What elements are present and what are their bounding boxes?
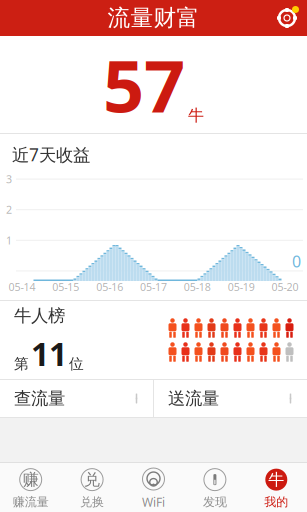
staticText: 兑 [84, 470, 100, 489]
staticText: 送流量 [168, 388, 219, 409]
staticText: 05-17 [140, 280, 167, 294]
button[interactable]: 牛 [246, 465, 307, 512]
button[interactable]: 查流量 [0, 380, 153, 417]
button[interactable]: 兑 [61, 465, 123, 512]
staticText: 发现 [203, 495, 227, 509]
staticText: 赚 [23, 470, 39, 489]
staticText: 05-14 [8, 280, 35, 294]
staticText: 11 [31, 332, 67, 375]
button[interactable]: 送流量 [154, 380, 307, 417]
staticText: 查流量 [14, 388, 65, 409]
button[interactable]: Settings [267, 0, 307, 36]
staticText: 05-19 [228, 280, 255, 294]
staticText: 近7天收益 [12, 143, 90, 166]
staticText: 05-16 [96, 280, 123, 294]
staticText: 兑换 [80, 495, 104, 509]
staticText: 3 [6, 172, 12, 186]
staticText: 1 [6, 233, 12, 247]
staticText: 流量财富 [107, 4, 199, 32]
staticText: 牛 [188, 106, 204, 125]
staticText: 2 [6, 203, 12, 217]
staticText: 05-18 [184, 280, 211, 294]
button[interactable]: 赚 [0, 465, 61, 512]
staticText: 我的 [264, 495, 288, 509]
staticText: 赚流量 [13, 495, 49, 509]
staticText: 05-15 [52, 280, 79, 294]
staticText: 位 [69, 355, 84, 373]
staticText: 05-20 [272, 280, 299, 294]
staticText: 0 [292, 251, 301, 272]
staticText: 第 [14, 355, 29, 373]
staticText: 57 [103, 37, 185, 132]
button[interactable]: 发现 [184, 465, 246, 512]
staticText: 牛人榜 [14, 305, 65, 326]
button[interactable]: WiFi [123, 465, 184, 512]
staticText: WiFi [142, 494, 165, 510]
staticText: 牛 [268, 470, 284, 489]
